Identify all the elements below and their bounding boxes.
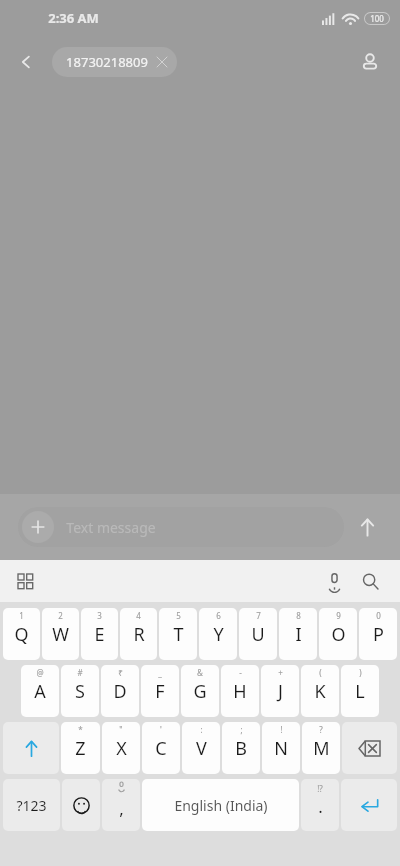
staticText: 3 (97, 610, 102, 621)
staticText: ' (160, 724, 162, 735)
button[interactable]: 18730218809 (52, 47, 177, 77)
staticText: , (119, 797, 124, 820)
button[interactable]: 4 (120, 608, 157, 660)
button[interactable]: - (221, 665, 259, 717)
button[interactable]: Comma and voice (102, 779, 140, 831)
button[interactable]: 5 (159, 608, 197, 660)
button[interactable]: ' (142, 722, 180, 774)
staticText: A (34, 679, 46, 704)
button[interactable]: Back (8, 44, 44, 80)
staticText: # (77, 667, 83, 678)
staticText: : (200, 724, 203, 735)
button[interactable]: ( (301, 665, 339, 717)
staticText: M (313, 736, 330, 761)
button[interactable]: 9 (319, 608, 357, 660)
staticText: ! (280, 724, 283, 735)
staticText: ( (319, 667, 322, 678)
button[interactable]: Send (344, 504, 390, 550)
staticText: F (155, 679, 165, 704)
button[interactable]: # (61, 665, 99, 717)
staticText: C (155, 736, 167, 761)
staticText: I (295, 622, 302, 647)
staticText: 2:36 AM (48, 9, 99, 27)
button[interactable]: !? (301, 779, 339, 831)
staticText: & (197, 667, 203, 678)
staticText: ?123 (16, 796, 47, 815)
staticText: 100 (370, 13, 384, 24)
button[interactable]: Search (352, 563, 388, 599)
staticText: ₹ (118, 667, 123, 678)
staticText: K (314, 679, 326, 704)
staticText: 9 (336, 610, 341, 621)
button[interactable]: " (102, 722, 140, 774)
staticText: N (274, 736, 288, 761)
staticText: H (233, 679, 247, 704)
staticText: English (India) (174, 796, 268, 815)
button[interactable]: English (India) (142, 779, 299, 831)
button[interactable]: : (182, 722, 220, 774)
button[interactable]: ₹ (101, 665, 139, 717)
button[interactable]: 3 (81, 608, 118, 660)
staticText: ) (359, 667, 362, 678)
staticText: - (239, 667, 242, 678)
staticText: Z (75, 736, 86, 761)
button[interactable]: ? (302, 722, 340, 774)
button[interactable]: Attach (22, 511, 54, 543)
staticText: Text message (66, 518, 156, 537)
button[interactable]: ; (222, 722, 260, 774)
staticText: O (331, 622, 346, 647)
staticText: @ (36, 667, 44, 678)
button[interactable]: Backspace (342, 722, 397, 774)
staticText: V (196, 736, 207, 761)
button[interactable]: & (181, 665, 219, 717)
button[interactable]: 8 (279, 608, 317, 660)
button[interactable]: Emoji (62, 779, 100, 831)
staticText: T (173, 622, 184, 647)
staticText: 5 (176, 610, 181, 621)
button[interactable]: _ (141, 665, 179, 717)
button[interactable]: Shift (3, 722, 59, 774)
staticText: 6 (216, 610, 221, 621)
button[interactable]: Enter (341, 779, 397, 831)
button[interactable]: 1 (3, 608, 40, 660)
staticText: " (119, 724, 123, 735)
staticText: L (355, 679, 365, 704)
staticText: P (373, 622, 384, 647)
staticText: * (78, 724, 83, 735)
button[interactable]: ) (341, 665, 379, 717)
staticText: U (251, 622, 265, 647)
staticText: !? (317, 783, 323, 794)
staticText: J (278, 679, 283, 704)
staticText: B (235, 736, 247, 761)
button[interactable]: ! (262, 722, 300, 774)
staticText: D (113, 679, 127, 704)
staticText: 4 (136, 610, 141, 621)
staticText: 8 (296, 610, 301, 621)
staticText: . (318, 795, 323, 818)
button[interactable]: ?123 (3, 779, 60, 831)
staticText: G (193, 679, 207, 704)
staticText: ? (319, 724, 323, 735)
button[interactable]: 0 (359, 608, 397, 660)
staticText: ; (240, 724, 243, 735)
staticText: 7 (256, 610, 261, 621)
staticText: R (133, 622, 145, 647)
button[interactable]: 6 (199, 608, 237, 660)
staticText: Q (14, 622, 29, 647)
button[interactable]: + (261, 665, 299, 717)
staticText: S (75, 679, 85, 704)
button[interactable]: Contact details (350, 42, 390, 82)
button[interactable]: @ (21, 665, 59, 717)
staticText: 18730218809 (66, 53, 148, 71)
staticText: 1 (19, 610, 24, 621)
staticText: 2 (58, 610, 63, 621)
staticText: W (52, 622, 69, 647)
button[interactable]: Keyboard options (8, 564, 42, 598)
button[interactable]: Attach (18, 507, 344, 547)
staticText: X (116, 736, 127, 761)
button[interactable]: * (61, 722, 100, 774)
button[interactable]: Voice input (316, 563, 352, 599)
button[interactable]: 7 (239, 608, 277, 660)
staticText: Y (213, 622, 224, 647)
button[interactable]: 2 (42, 608, 79, 660)
